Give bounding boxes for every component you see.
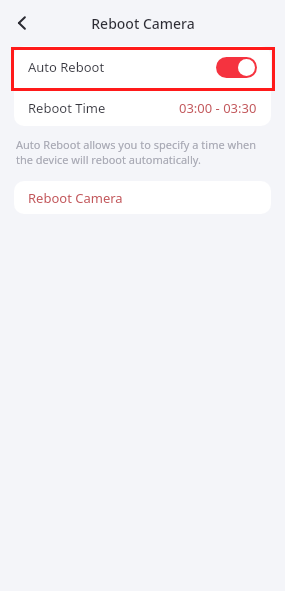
staticText: Auto Reboot allows you to specify a time… bbox=[16, 137, 269, 167]
staticText: Reboot Time bbox=[28, 99, 106, 117]
button[interactable]: Auto Reboot toggle, on bbox=[216, 57, 257, 78]
button[interactable]: Reboot Camera bbox=[14, 181, 271, 214]
button[interactable]: Auto Reboot bbox=[14, 46, 271, 88]
staticText: Auto Reboot bbox=[28, 58, 105, 76]
button[interactable]: Back bbox=[2, 3, 42, 43]
staticText: Reboot Camera bbox=[28, 189, 123, 207]
staticText: 03:00 - 03:30 bbox=[179, 99, 257, 117]
staticText: Reboot Camera bbox=[91, 14, 195, 33]
button[interactable]: Reboot Time bbox=[14, 89, 271, 126]
